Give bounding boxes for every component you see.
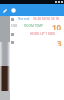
staticText: HOOK UP 1 KIDS: [30, 32, 56, 36]
button[interactable]: Backup: [9, 6, 18, 15]
button[interactable]: 3: [0, 38, 64, 46]
staticText: Normal: [18, 17, 30, 21]
button[interactable]: Normal: [0, 16, 64, 22]
staticText: 5/20: [11, 24, 18, 28]
button[interactable]: Edit: [0, 6, 9, 15]
staticText: 10: [52, 22, 62, 30]
staticText: 3: [57, 38, 62, 46]
staticText: ROOM TEMP: [24, 24, 44, 28]
staticText: 35 40 60 50 35 78: [33, 17, 60, 21]
button[interactable]: 5/20: [0, 22, 64, 30]
button[interactable]: HOOK UP 1 KIDS: [0, 30, 64, 38]
